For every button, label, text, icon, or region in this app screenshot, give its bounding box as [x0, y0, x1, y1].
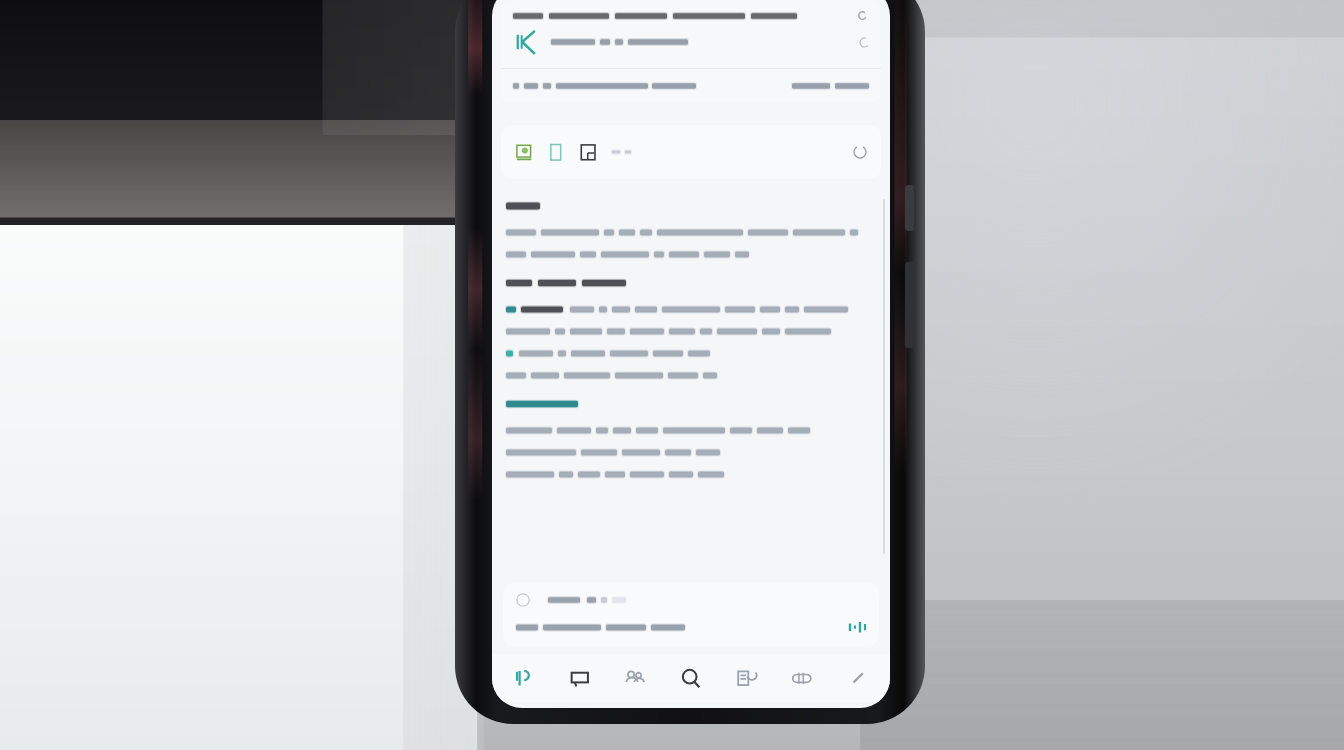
button[interactable]: [501, 69, 881, 103]
other: App logo: [513, 28, 541, 56]
button[interactable]: Send: [848, 618, 866, 636]
button[interactable]: Files: [727, 658, 767, 698]
button[interactable]: Search: [671, 658, 711, 698]
button[interactable]: Refresh: [853, 145, 867, 159]
other: More: [856, 9, 869, 22]
button[interactable]: Chats: [560, 658, 600, 698]
button[interactable]: App logo: [501, 24, 881, 68]
button[interactable]: More: [501, 0, 881, 24]
button[interactable]: Note: [579, 143, 598, 162]
button[interactable]: Document: [547, 143, 566, 162]
button[interactable]: Tools: [782, 658, 822, 698]
button[interactable]: People: [615, 658, 655, 698]
button[interactable]: Home: [504, 658, 544, 698]
button[interactable]: Edit: [838, 658, 878, 698]
button[interactable]: Sheets: [515, 143, 534, 162]
button[interactable]: Send: [503, 583, 879, 646]
